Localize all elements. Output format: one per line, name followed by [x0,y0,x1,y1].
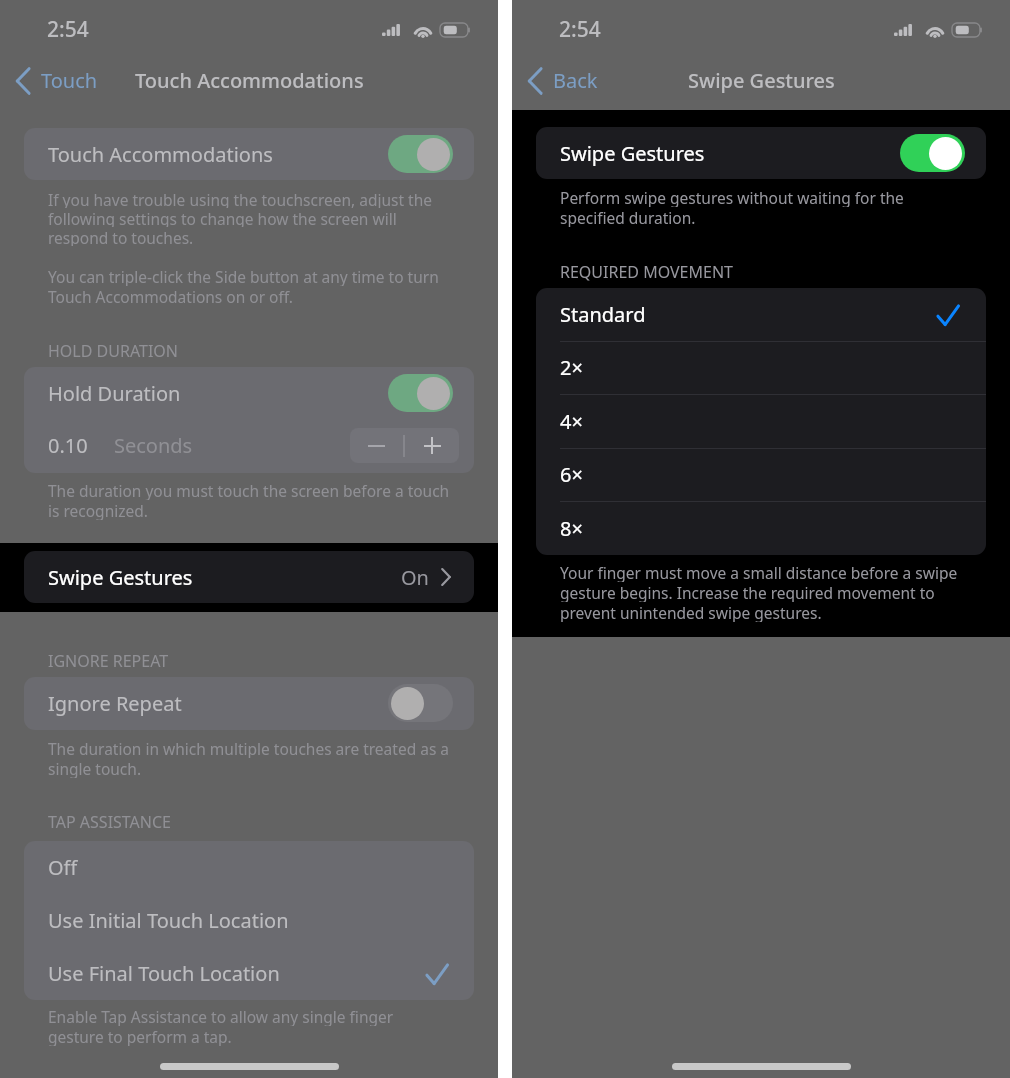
staticText: You can triple-click the Side button at … [48,266,439,286]
button[interactable]: Touch [15,58,98,103]
button[interactable]: Toggle [388,684,453,722]
other: Battery [440,23,471,37]
staticText: Touch Accommodations on or off. [48,286,293,306]
staticText: The duration you must touch the screen b… [48,480,450,500]
button[interactable]: Toggle [388,135,453,173]
staticText: Your finger must move a small distance b… [560,562,958,582]
button[interactable]: Off [24,841,474,894]
staticText: REQUIRED MOVEMENT [560,261,733,283]
staticText: following settings to change how the scr… [48,208,397,227]
staticText: HOLD DURATION [48,340,178,362]
button[interactable]: Touch Accommodations [24,128,474,180]
staticText: 2:54 [47,15,89,44]
staticText: Use Initial Touch Location [48,907,289,934]
staticText: Use Final Touch Location [48,960,280,987]
staticText: Touch [41,67,98,94]
staticText: Standard [560,301,646,328]
staticText: 6× [560,461,583,488]
staticText: Swipe Gestures [688,67,835,94]
button[interactable]: Swipe Gestures [536,127,986,179]
staticText: Back [553,67,598,94]
button[interactable]: Decrease [350,428,403,463]
button[interactable]: Increase [405,428,459,463]
other: Battery [952,23,983,37]
staticText: Swipe Gestures [560,140,705,167]
staticText: 2× [560,354,583,381]
button[interactable]: 2× [536,341,986,394]
staticText: The duration in which multiple touches a… [48,738,450,758]
button[interactable]: Swipe Gestures [24,551,474,603]
button[interactable]: Use Initial Touch Location [24,894,474,947]
button[interactable]: 4× [536,394,986,448]
staticText: prevent unintended swipe gestures. [560,602,822,622]
other: Wi-Fi [925,22,945,37]
staticText: 8× [560,515,583,542]
staticText: Seconds [114,432,193,459]
staticText: Enable Tap Assistance to allow any singl… [48,1006,394,1026]
staticText: Ignore Repeat [48,690,182,717]
staticText: If you have trouble using the touchscree… [48,189,433,208]
button[interactable]: Use Final Touch Location [24,947,474,1000]
staticText: Hold Duration [48,380,181,407]
staticText: gesture begins. Increase the required mo… [560,582,935,602]
other: Wi-Fi [413,22,433,37]
staticText: specified duration. [560,207,696,227]
button[interactable]: Toggle [900,134,965,172]
staticText: respond to touches. [48,227,194,246]
button[interactable]: Ignore Repeat [24,677,474,729]
staticText: Swipe Gestures [48,564,193,591]
staticText: Touch Accommodations [48,141,273,168]
button[interactable]: 6× [536,448,986,501]
staticText: IGNORE REPEAT [48,650,169,672]
button[interactable]: Standard [536,288,986,341]
staticText: 0.10 [48,432,88,459]
other: Cellular signal [894,24,912,36]
staticText: 4× [560,408,583,435]
other: Cellular signal [382,24,400,36]
staticText: single touch. [48,758,142,778]
staticText: Off [48,854,78,881]
staticText: On [401,564,429,591]
button[interactable]: Toggle [388,374,453,412]
button[interactable]: Hold Duration [24,367,474,419]
staticText: is recognized. [48,500,148,520]
staticText: gesture to perform a tap. [48,1026,232,1046]
staticText: Touch Accommodations [135,67,364,94]
button[interactable]: 8× [536,501,986,555]
staticText: TAP ASSISTANCE [48,811,172,833]
staticText: 2:54 [559,15,601,44]
staticText: Perform swipe gestures without waiting f… [560,187,904,207]
button[interactable]: Back [527,58,598,103]
